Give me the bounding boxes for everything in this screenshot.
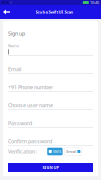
staticText: Choose user name [8, 102, 53, 109]
staticText: SMS [53, 149, 61, 154]
button[interactable]: SMS [47, 148, 63, 155]
staticText: Password [8, 120, 32, 127]
staticText: Name [8, 43, 19, 48]
button[interactable]: SIGN UP [8, 163, 93, 172]
staticText: Confirm password [8, 138, 52, 145]
staticText: SIGN UP [42, 165, 58, 170]
staticText: 10:45 [90, 0, 99, 5]
staticText: Sign up [8, 30, 25, 37]
staticText: +91 Phone number [8, 84, 53, 91]
button[interactable]: Email [65, 148, 82, 155]
staticText: Email [8, 66, 21, 73]
staticText: Verification : [8, 148, 37, 155]
staticText: Email [66, 149, 76, 154]
staticText: Scuba SwiftUI Scan [35, 9, 73, 15]
button[interactable]: Back [0, 6, 13, 18]
